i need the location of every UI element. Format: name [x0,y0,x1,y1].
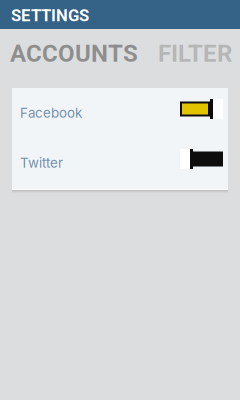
staticText: Twitter [20,155,63,171]
staticText: SETTINGS [11,6,89,25]
button[interactable]: ACCOUNTS [10,39,138,67]
button[interactable]: Facebook [12,88,228,138]
staticText: ACCOUNTS [10,39,138,67]
button[interactable]: FILTER [158,39,232,67]
staticText: Facebook [20,105,82,121]
button[interactable]: Twitter [12,138,228,188]
staticText: FILTER [158,39,232,67]
